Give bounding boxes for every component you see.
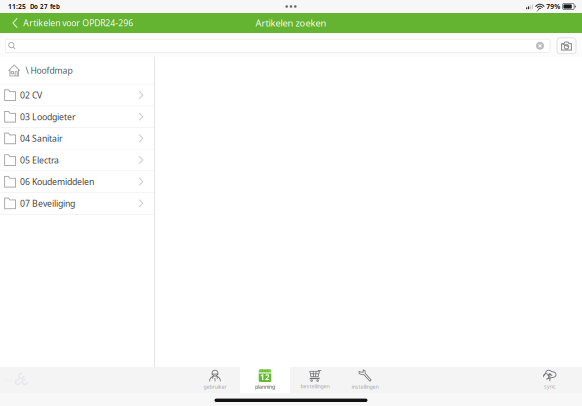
- button[interactable]: gebruiker: [190, 367, 240, 393]
- button[interactable]: Artikelen voor OPDR24-296: [0, 13, 143, 33]
- button[interactable]: 12: [240, 367, 290, 393]
- button[interactable]: instellingen: [340, 367, 390, 393]
- staticText: 12: [260, 372, 270, 382]
- button[interactable]: 06 Koudemiddelen: [0, 171, 154, 193]
- staticText: sync: [544, 383, 556, 390]
- button[interactable]: Multitasking controls: [276, 0, 306, 13]
- staticText: 03 Loodgieter: [20, 111, 76, 123]
- staticText: 07 Beveiliging: [20, 197, 75, 209]
- staticText: 11:25: [8, 2, 26, 11]
- staticText: 79%: [546, 2, 560, 11]
- staticText: Artikelen zoeken: [255, 17, 326, 29]
- button[interactable]: Search field: [5, 39, 550, 52]
- button[interactable]: sync: [527, 367, 573, 393]
- staticText: planning: [255, 383, 275, 390]
- button[interactable]: bestellingen: [290, 367, 340, 393]
- button[interactable]: Artikelen zoeken: [245, 13, 336, 33]
- button[interactable]: 05 Electra: [0, 150, 154, 171]
- staticText: \ Hoofdmap: [25, 65, 72, 76]
- staticText: 05 Electra: [20, 154, 59, 166]
- staticText: bestellingen: [300, 383, 329, 390]
- staticText: 06 Koudemiddelen: [20, 176, 94, 188]
- staticText: 04 Sanitair: [20, 132, 63, 144]
- staticText: 02 CV: [20, 89, 42, 101]
- staticText: Artikelen voor OPDR24-296: [23, 17, 133, 29]
- staticText: gebruiker: [203, 383, 226, 390]
- button[interactable]: 07 Beveiliging: [0, 193, 154, 215]
- button[interactable]: 03 Loodgieter: [0, 106, 154, 128]
- staticText: instellingen: [351, 383, 378, 390]
- button[interactable]: Scan barcode: [557, 38, 576, 54]
- button[interactable]: 02 CV: [0, 85, 154, 106]
- button[interactable]: \ Hoofdmap: [0, 57, 154, 84]
- button[interactable]: 04 Sanitair: [0, 128, 154, 150]
- staticText: Do 27 feb: [30, 2, 60, 11]
